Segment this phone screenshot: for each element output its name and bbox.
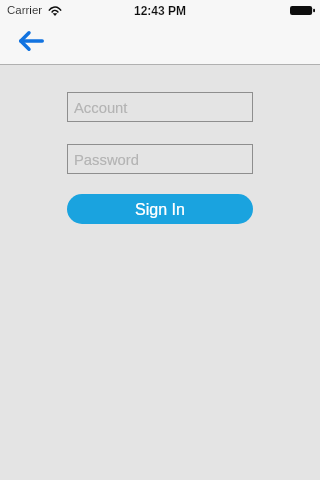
staticText: Account <box>74 100 128 117</box>
staticText: Carrier <box>7 4 43 17</box>
button[interactable]: Back <box>4 21 49 61</box>
staticText: Sign In <box>135 201 185 219</box>
staticText: Password <box>74 152 139 169</box>
button[interactable]: Password <box>67 144 253 174</box>
button[interactable]: Sign In <box>67 194 253 224</box>
staticText: 12:43 PM <box>134 4 187 17</box>
button[interactable]: Account <box>67 92 253 122</box>
